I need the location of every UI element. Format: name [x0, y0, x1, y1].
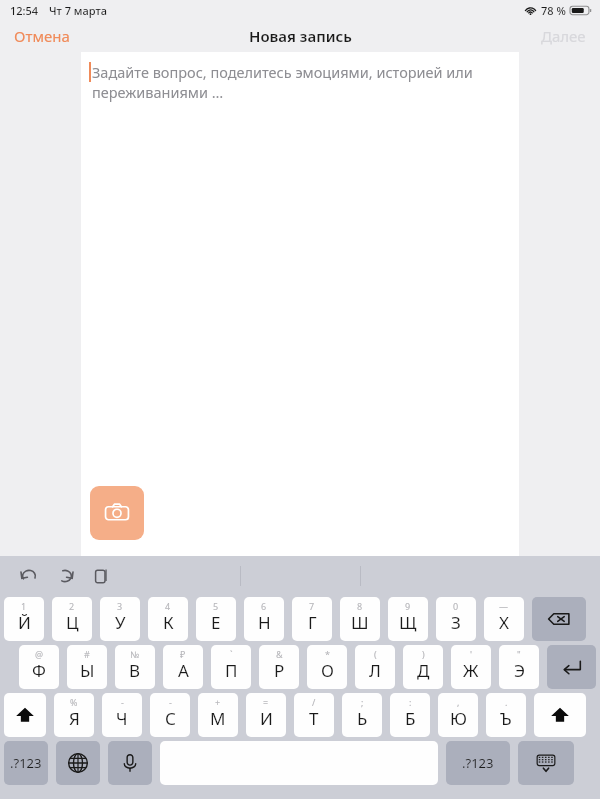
button[interactable]: Вставить — [84, 559, 118, 593]
staticText: И — [260, 707, 273, 730]
button[interactable]: ' — [451, 645, 491, 689]
button[interactable]: - — [102, 693, 142, 737]
staticText: К — [163, 611, 174, 634]
staticText: Ъ — [500, 707, 512, 730]
staticText: 78 % — [541, 3, 566, 18]
staticText: = — [263, 696, 269, 708]
staticText: & — [276, 648, 283, 660]
staticText: Г — [308, 611, 317, 634]
staticText: — — [499, 600, 509, 612]
staticText: № — [130, 648, 140, 660]
button[interactable]: — — [484, 597, 524, 641]
button[interactable]: 4 — [148, 597, 188, 641]
staticText: Ч — [116, 707, 128, 730]
staticText: 0 — [453, 600, 459, 612]
staticText: П — [225, 659, 238, 682]
staticText: 1 — [21, 600, 27, 612]
staticText: Е — [211, 611, 221, 634]
staticText: Д — [417, 659, 430, 682]
button[interactable]: 9 — [388, 597, 428, 641]
button[interactable]: Добавить фото — [90, 486, 144, 540]
button[interactable]: ( — [355, 645, 395, 689]
staticText: Ф — [32, 659, 46, 682]
button[interactable]: Скрыть клавиатуру — [518, 741, 574, 785]
button[interactable]: Отменить — [12, 559, 46, 593]
button[interactable]: № — [115, 645, 155, 689]
button[interactable]: & — [259, 645, 299, 689]
button[interactable]: Диктовка — [108, 741, 152, 785]
staticText: ` — [230, 648, 233, 660]
staticText: Т — [309, 707, 319, 730]
staticText: / — [312, 696, 316, 708]
staticText: Ь — [357, 707, 368, 730]
button[interactable]: Удалить — [532, 597, 586, 641]
staticText: Щ — [399, 611, 417, 634]
staticText: . — [505, 696, 508, 708]
staticText: .?123 — [10, 754, 42, 772]
staticText: 6 — [261, 600, 267, 612]
button[interactable]: : — [390, 693, 430, 737]
staticText: Б — [405, 707, 416, 730]
staticText: А — [178, 659, 189, 682]
button[interactable]: 2 — [52, 597, 92, 641]
button[interactable]: = — [246, 693, 286, 737]
staticText: - — [169, 696, 172, 708]
button[interactable]: Верхний регистр — [4, 693, 46, 737]
button[interactable]: + — [198, 693, 238, 737]
button[interactable]: Верхний регистр — [534, 693, 586, 737]
staticText: , — [457, 696, 460, 708]
staticText: * — [325, 648, 330, 660]
button[interactable]: " — [499, 645, 539, 689]
button[interactable]: # — [67, 645, 107, 689]
button[interactable]: Отмена — [0, 22, 84, 50]
staticText: Н — [258, 611, 271, 634]
staticText: Л — [369, 659, 381, 682]
staticText: Э — [514, 659, 525, 682]
button[interactable]: Повторить — [48, 559, 82, 593]
staticText: Й — [18, 611, 31, 634]
staticText: Ю — [450, 707, 467, 730]
staticText: Далее — [541, 26, 586, 46]
staticText: Ш — [351, 611, 369, 634]
button[interactable]: , — [438, 693, 478, 737]
button[interactable]: . — [486, 693, 526, 737]
button[interactable]: .?123 — [446, 741, 510, 785]
staticText: .?123 — [462, 754, 494, 772]
button[interactable]: % — [54, 693, 94, 737]
staticText: # — [84, 648, 90, 660]
button[interactable]: Далее — [527, 22, 600, 50]
staticText: % — [70, 696, 78, 708]
button[interactable]: * — [307, 645, 347, 689]
button[interactable]: @ — [19, 645, 59, 689]
staticText: 12:54 — [10, 3, 39, 18]
staticText: @ — [35, 648, 44, 660]
button[interactable]: 8 — [340, 597, 380, 641]
staticText: - — [121, 696, 124, 708]
button[interactable]: 6 — [244, 597, 284, 641]
button[interactable]: 3 — [100, 597, 140, 641]
staticText: 2 — [69, 600, 75, 612]
staticText: 8 — [357, 600, 363, 612]
button[interactable]: 1 — [4, 597, 44, 641]
button[interactable]: 7 — [292, 597, 332, 641]
staticText: С — [165, 707, 176, 730]
staticText: М — [210, 707, 226, 730]
staticText: 7 — [309, 600, 315, 612]
button[interactable]: Ввод — [547, 645, 596, 689]
button[interactable]: ₽ — [163, 645, 203, 689]
staticText: : — [409, 696, 412, 708]
button[interactable]: .?123 — [4, 741, 48, 785]
staticText: Ы — [80, 659, 95, 682]
button[interactable]: 0 — [436, 597, 476, 641]
button[interactable]: 5 — [196, 597, 236, 641]
button[interactable]: Сменить язык — [56, 741, 100, 785]
staticText: ) — [422, 648, 425, 660]
button[interactable]: ` — [211, 645, 251, 689]
button[interactable]: - — [150, 693, 190, 737]
button[interactable]: / — [294, 693, 334, 737]
button[interactable]: ; — [342, 693, 382, 737]
staticText: 4 — [165, 600, 171, 612]
staticText: ₽ — [180, 648, 186, 660]
button[interactable]: ) — [403, 645, 443, 689]
